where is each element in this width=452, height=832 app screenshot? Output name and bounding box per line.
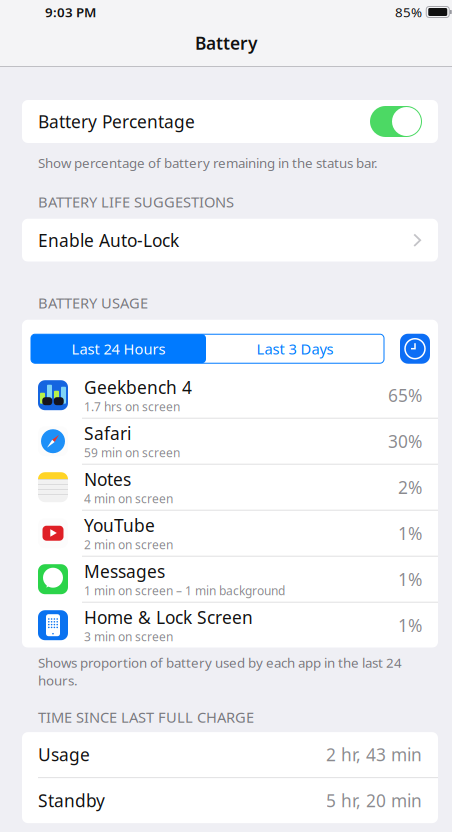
staticText: Standby <box>38 789 105 812</box>
staticText: Enable Auto-Lock <box>38 229 179 252</box>
staticText: 1% <box>398 614 422 637</box>
button[interactable]: Show battery usage by time <box>400 334 430 364</box>
button[interactable]: Last 3 Days <box>206 334 384 363</box>
staticText: Messages <box>84 560 165 583</box>
staticText: Home & Lock Screen <box>84 606 253 629</box>
staticText: 1% <box>398 522 422 545</box>
button[interactable]: Safari <box>22 419 438 464</box>
staticText: 59 min on screen <box>84 445 180 461</box>
button[interactable]: Enable Auto-Lock <box>22 219 438 262</box>
staticText: BATTERY LIFE SUGGESTIONS <box>38 192 234 211</box>
staticText: 2% <box>398 476 422 499</box>
staticText: Last 24 Hours <box>71 339 165 358</box>
button[interactable]: Battery Percentage <box>22 100 438 143</box>
staticText: 4 min on screen <box>84 491 173 507</box>
staticText: YouTube <box>84 514 155 537</box>
staticText: 1.7 hrs on screen <box>84 399 180 415</box>
staticText: BATTERY USAGE <box>38 293 148 312</box>
staticText: 1% <box>398 568 422 591</box>
staticText: Usage <box>38 743 90 766</box>
staticText: Last 3 Days <box>256 339 333 358</box>
staticText: 3 min on screen <box>84 629 173 645</box>
staticText: 2 hr, 43 min <box>326 743 422 766</box>
staticText: Safari <box>84 422 131 445</box>
button[interactable]: Notes <box>22 465 438 510</box>
staticText: Battery <box>195 31 257 54</box>
staticText: 30% <box>388 430 422 453</box>
staticText: 9:03 PM <box>45 3 96 21</box>
staticText: 5 hr, 20 min <box>326 789 422 812</box>
staticText: Battery Percentage <box>38 110 195 133</box>
button[interactable]: YouTube <box>22 511 438 556</box>
button[interactable]: Last 24 Hours <box>31 334 206 363</box>
button[interactable]: Geekbench 4 <box>22 373 438 418</box>
staticText: Show percentage of battery remaining in … <box>38 154 378 172</box>
staticText: TIME SINCE LAST FULL CHARGE <box>38 707 254 727</box>
staticText: 65% <box>388 384 422 407</box>
staticText: Notes <box>84 468 131 491</box>
button[interactable]: Home & Lock Screen <box>22 603 438 648</box>
staticText: 1 min on screen – 1 min background <box>84 583 285 599</box>
button[interactable]: Messages <box>22 557 438 602</box>
staticText: Shows proportion of battery used by each… <box>38 654 402 689</box>
staticText: 2 min on screen <box>84 537 173 553</box>
staticText: 85% <box>395 3 422 21</box>
staticText: Geekbench 4 <box>84 376 192 399</box>
